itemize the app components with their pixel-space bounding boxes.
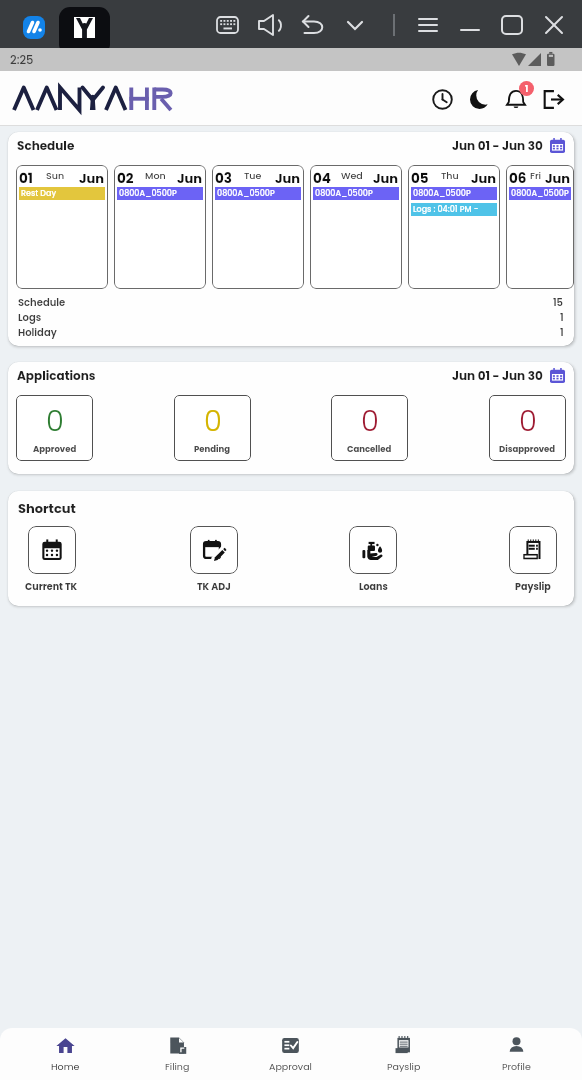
staticText: Logs : 04:01 PM -: [413, 204, 481, 215]
staticText: 0: [46, 401, 64, 442]
button[interactable]: 01: [16, 165, 108, 289]
staticText: Loans: [359, 580, 388, 593]
staticText: Cancelled: [347, 443, 392, 455]
staticText: Jun 01 - Jun 30: [452, 367, 543, 384]
staticText: 0: [361, 401, 379, 442]
staticText: 05: [411, 169, 429, 183]
staticText: 1: [525, 83, 529, 95]
staticText: Logs: [18, 310, 42, 324]
staticText: Approval: [269, 1060, 312, 1073]
button[interactable]: Notifications: [499, 82, 533, 116]
staticText: Rest Day: [21, 188, 57, 199]
button[interactable]: Dark mode: [462, 82, 496, 116]
staticText: Filing: [165, 1060, 190, 1073]
staticText: 1: [560, 310, 564, 324]
staticText: Home: [51, 1060, 80, 1073]
button[interactable]: 04: [310, 165, 402, 289]
staticText: 0800A_0500P: [413, 188, 471, 199]
staticText: 04: [313, 169, 331, 183]
staticText: Sun: [46, 169, 65, 182]
staticText: 0: [204, 401, 222, 442]
staticText: 02: [117, 169, 134, 183]
staticText: 0800A_0500P: [511, 188, 569, 199]
button[interactable]: Profile: [460, 1028, 573, 1080]
staticText: 15: [553, 295, 564, 309]
button[interactable]: 02: [114, 165, 206, 289]
button[interactable]: Logout: [536, 82, 570, 116]
staticText: Mon: [145, 169, 166, 182]
staticText: 0: [519, 401, 537, 442]
button[interactable]: Time logs: [425, 82, 459, 116]
staticText: Jun: [373, 169, 399, 183]
staticText: 0800A_0500P: [315, 188, 373, 199]
staticText: 2:25: [10, 52, 34, 68]
staticText: Current TK: [25, 580, 78, 593]
staticText: Applications: [17, 367, 96, 384]
button[interactable]: Approval: [234, 1028, 347, 1080]
button[interactable]: Filing: [121, 1028, 234, 1080]
button[interactable]: Payslip: [509, 526, 557, 593]
button[interactable]: Payslip: [347, 1028, 460, 1080]
button[interactable]: Pick date range: [549, 367, 566, 384]
staticText: 03: [215, 169, 232, 183]
staticText: Jun: [177, 169, 203, 183]
staticText: Schedule: [18, 295, 66, 309]
staticText: 01: [19, 169, 33, 183]
staticText: Fri: [530, 169, 542, 182]
staticText: Pending: [194, 443, 231, 455]
button[interactable]: 05: [408, 165, 500, 289]
staticText: Disapproved: [499, 443, 556, 455]
button[interactable]: Loans: [349, 526, 397, 593]
staticText: Profile: [502, 1060, 531, 1073]
staticText: Schedule: [17, 137, 75, 154]
staticText: 0800A_0500P: [217, 188, 275, 199]
staticText: Jun: [79, 169, 105, 183]
button[interactable]: TK ADJ: [190, 526, 238, 593]
staticText: TK ADJ: [197, 580, 231, 593]
staticText: Wed: [341, 169, 363, 182]
staticText: Jun: [545, 169, 571, 183]
staticText: Jun 01 - Jun 30: [452, 137, 543, 154]
button[interactable]: 03: [212, 165, 304, 289]
staticText: Jun: [275, 169, 301, 183]
button[interactable]: Pick date range: [549, 137, 566, 154]
button[interactable]: Home: [9, 1028, 121, 1080]
staticText: Jun: [471, 169, 497, 183]
button[interactable]: 0: [16, 395, 93, 461]
button[interactable]: 0: [331, 395, 408, 461]
staticText: Shortcut: [18, 499, 76, 517]
staticText: 06: [509, 169, 527, 183]
staticText: Approved: [33, 443, 77, 455]
button[interactable]: Current TK: [25, 526, 78, 593]
staticText: Payslip: [515, 580, 551, 593]
staticText: Thu: [441, 169, 459, 182]
button[interactable]: 06: [506, 165, 574, 289]
staticText: 0800A_0500P: [119, 188, 177, 199]
staticText: Payslip: [387, 1060, 421, 1073]
staticText: 1: [560, 325, 564, 339]
button[interactable]: 0: [489, 395, 566, 461]
staticText: Holiday: [18, 325, 57, 339]
button[interactable]: 0: [174, 395, 251, 461]
staticText: Tue: [244, 169, 262, 182]
